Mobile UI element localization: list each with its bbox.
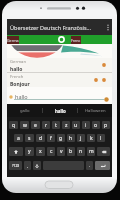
button[interactable]: German [7, 36, 19, 44]
button[interactable]: k [87, 134, 95, 142]
staticText: German [7, 38, 19, 43]
button[interactable]: a [14, 134, 23, 142]
button[interactable]: e [31, 121, 40, 129]
staticText: w [23, 122, 27, 129]
button[interactable]: t [52, 121, 60, 129]
staticText: d [39, 135, 43, 142]
button[interactable]: z [62, 121, 70, 129]
button[interactable]: s [25, 134, 34, 142]
button[interactable]: French [71, 36, 81, 44]
staticText: v [60, 148, 63, 155]
button[interactable]: Backspace [97, 147, 110, 156]
button[interactable]: ?123 [9, 161, 22, 170]
button[interactable]: m [87, 147, 95, 156]
staticText: l [100, 135, 102, 142]
button[interactable]: r [42, 121, 50, 129]
staticText: x [39, 148, 42, 155]
staticText: Bonjour [10, 81, 30, 87]
staticText: s [28, 135, 31, 142]
staticText: c [50, 148, 53, 155]
button[interactable]: o [92, 121, 100, 129]
button[interactable]: q [9, 121, 18, 129]
staticText: m [89, 148, 94, 155]
button[interactable]: v [57, 147, 65, 156]
button[interactable]: More options [103, 19, 112, 35]
staticText: , [27, 163, 29, 168]
staticText: Übersetzer Deutsch Französis... [10, 24, 92, 31]
button[interactable]: b [67, 147, 75, 156]
button[interactable]: Listen [101, 77, 107, 83]
button[interactable]: n [77, 147, 85, 156]
button[interactable]: w [20, 121, 29, 129]
staticText: hallo [10, 66, 23, 72]
button[interactable]: j [77, 134, 85, 142]
staticText: hallo [15, 93, 28, 100]
button[interactable]: French [7, 73, 112, 87]
staticText: t [55, 122, 57, 129]
staticText: e [34, 122, 37, 129]
button[interactable]: x [36, 147, 45, 156]
staticText: German [10, 59, 26, 65]
button[interactable]: Enter [95, 161, 110, 170]
button[interactable]: f [47, 134, 55, 142]
staticText: b [69, 148, 73, 155]
staticText: j [80, 135, 82, 142]
button[interactable]: Shift [9, 147, 23, 156]
staticText: gallo [20, 108, 30, 114]
staticText: Halloween [85, 108, 106, 114]
button[interactable]: Listen [93, 77, 99, 83]
staticText: a [17, 135, 20, 142]
button[interactable]: Swap languages [57, 35, 65, 44]
staticText: f [50, 135, 52, 142]
button[interactable]: German [7, 58, 112, 72]
button[interactable]: g [57, 134, 65, 142]
staticText: z [65, 122, 68, 129]
button[interactable]: Halloween [78, 104, 112, 117]
staticText: h [69, 135, 73, 142]
staticText: r [45, 122, 48, 129]
button[interactable]: Listen [101, 62, 107, 68]
staticText: p [104, 122, 108, 129]
staticText: o [94, 122, 98, 129]
button[interactable]: gallo [7, 104, 42, 117]
staticText: . [89, 163, 91, 168]
staticText: i [85, 122, 87, 129]
button[interactable]: Clear [104, 97, 109, 102]
button[interactable]: y [25, 147, 34, 156]
button[interactable]: c [47, 147, 55, 156]
button[interactable]: p [102, 121, 110, 129]
staticText: y [28, 148, 31, 155]
staticText: g [59, 135, 63, 142]
staticText: hallo [55, 108, 66, 114]
button[interactable]: Übersetzer Deutsch Französis... [7, 19, 112, 35]
button[interactable]: d [36, 134, 45, 142]
staticText: French [10, 74, 24, 80]
staticText: n [79, 148, 83, 155]
staticText: u [74, 122, 78, 129]
button[interactable]: l [97, 134, 105, 142]
staticText: k [90, 135, 93, 142]
staticText: q [12, 122, 16, 129]
button[interactable]: u [72, 121, 80, 129]
button[interactable]: i [82, 121, 90, 129]
button[interactable]: Voice input [33, 161, 41, 170]
button[interactable]: hallo [43, 104, 77, 117]
staticText: French [71, 38, 81, 43]
button[interactable]: h [67, 134, 75, 142]
button[interactable]: . [86, 161, 93, 170]
button[interactable]: , [24, 161, 31, 170]
staticText: ?123 [12, 163, 20, 168]
